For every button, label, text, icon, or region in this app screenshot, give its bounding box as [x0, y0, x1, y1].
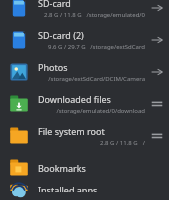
staticText: Installed apps	[38, 184, 98, 192]
staticText: /storage/extSdCard	[90, 43, 145, 51]
staticText: 9.6 G / 29.7 G	[48, 43, 86, 51]
other: Options	[151, 98, 163, 110]
staticText: Bookmarks	[38, 162, 86, 174]
button[interactable]: Installed apps	[0, 184, 169, 192]
staticText: SD-card	[38, 0, 71, 9]
staticText: Photos	[38, 61, 68, 73]
other: Options	[151, 130, 163, 142]
button[interactable]: SD-card	[0, 0, 169, 24]
button[interactable]: Photos	[0, 56, 169, 88]
other: Open	[151, 2, 163, 14]
staticText: SD-card (2)	[38, 29, 84, 41]
button[interactable]: SD-card (2)	[0, 24, 169, 56]
staticText: /storage/emulated/0/download	[56, 107, 145, 115]
button[interactable]: Bookmarks	[0, 152, 169, 184]
button[interactable]: Downloaded files	[0, 88, 169, 120]
staticText: 2.8 G / 11.8 G	[44, 11, 82, 19]
staticText: /storage/emulated/0	[86, 11, 145, 19]
staticText: /	[142, 139, 145, 147]
staticText: File system root	[38, 125, 105, 137]
staticText: 2.8 G / 11.8 G	[100, 139, 138, 147]
other: Open	[151, 66, 163, 78]
staticText: /storage/extSdCard/DCIM/Camera	[48, 75, 145, 83]
staticText: Downloaded files	[38, 93, 111, 105]
button[interactable]: File system root	[0, 120, 169, 152]
other: Open	[151, 34, 163, 46]
